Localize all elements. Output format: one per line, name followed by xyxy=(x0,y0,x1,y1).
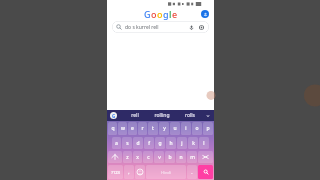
button[interactable]: , xyxy=(124,165,134,179)
button[interactable]: Space xyxy=(146,165,186,179)
button[interactable]: More suggestions xyxy=(204,112,211,119)
button[interactable]: n xyxy=(176,151,186,163)
button[interactable]: ?123 xyxy=(108,165,123,179)
staticText: r xyxy=(141,125,144,132)
staticText: p xyxy=(206,125,210,132)
staticText: rolls xyxy=(185,112,195,119)
button[interactable]: Voice search xyxy=(188,24,195,31)
button[interactable]: Backspace xyxy=(198,151,213,163)
button[interactable]: d xyxy=(133,137,143,149)
button[interactable]: Google Account xyxy=(201,10,209,18)
staticText: q xyxy=(111,125,115,132)
staticText: c xyxy=(147,154,150,161)
button[interactable]: x xyxy=(133,151,142,163)
staticText: b xyxy=(168,154,172,161)
button[interactable]: . xyxy=(187,165,197,179)
staticText: e xyxy=(172,8,178,20)
staticText: l xyxy=(203,140,205,147)
button[interactable]: w xyxy=(118,122,127,135)
staticText: . xyxy=(191,169,193,176)
staticText: , xyxy=(128,169,130,176)
staticText: l xyxy=(169,8,172,20)
button[interactable]: s xyxy=(122,137,132,149)
button[interactable]: rolling xyxy=(148,110,176,121)
button[interactable]: q xyxy=(108,122,117,135)
staticText: k xyxy=(192,140,195,147)
staticText: x xyxy=(136,154,139,161)
button[interactable]: e xyxy=(128,122,137,135)
staticText: rell xyxy=(131,112,139,119)
button[interactable]: u xyxy=(170,122,180,135)
staticText: j xyxy=(181,140,183,147)
button[interactable]: b xyxy=(165,151,175,163)
staticText: d xyxy=(136,140,140,147)
button[interactable]: h xyxy=(166,137,176,149)
staticText: g xyxy=(163,8,169,20)
staticText: h xyxy=(169,140,173,147)
staticText: z xyxy=(126,154,129,161)
button[interactable]: r xyxy=(138,122,147,135)
staticText: n xyxy=(179,154,183,161)
staticText: do s kurrel rell xyxy=(125,24,188,31)
staticText: rolling xyxy=(154,112,170,119)
staticText: a xyxy=(115,140,118,147)
staticText: o xyxy=(157,8,163,20)
button[interactable]: m xyxy=(187,151,197,163)
staticText: v xyxy=(158,154,161,161)
button[interactable]: Emoji xyxy=(135,165,145,179)
staticText: t xyxy=(152,125,154,132)
button[interactable]: rell xyxy=(121,110,148,121)
button[interactable]: y xyxy=(159,122,169,135)
button[interactable]: k xyxy=(188,137,198,149)
button[interactable]: rolls xyxy=(176,110,204,121)
button[interactable]: t xyxy=(148,122,158,135)
button[interactable]: j xyxy=(177,137,187,149)
staticText: G xyxy=(144,8,151,20)
button[interactable]: i xyxy=(181,122,191,135)
button[interactable]: p xyxy=(203,122,213,135)
staticText: G xyxy=(112,113,116,119)
staticText: e xyxy=(131,125,134,132)
staticText: o xyxy=(195,125,199,132)
button[interactable]: z xyxy=(123,151,132,163)
staticText: u xyxy=(173,125,177,132)
button[interactable]: Shift xyxy=(108,151,122,163)
staticText: w xyxy=(121,125,125,132)
button[interactable]: Search xyxy=(198,165,213,179)
staticText: s xyxy=(126,140,129,147)
button[interactable]: o xyxy=(192,122,202,135)
button[interactable]: v xyxy=(154,151,164,163)
staticText: y xyxy=(163,125,166,132)
staticText: g xyxy=(158,140,162,147)
button[interactable]: f xyxy=(144,137,154,149)
button[interactable]: Google search xyxy=(110,112,117,119)
staticText: m xyxy=(190,154,195,161)
button[interactable]: a xyxy=(112,137,121,149)
staticText: o xyxy=(151,8,157,20)
button[interactable]: c xyxy=(143,151,153,163)
button[interactable]: Google Lens xyxy=(198,24,205,31)
button[interactable]: g xyxy=(155,137,165,149)
button[interactable]: l xyxy=(199,137,209,149)
staticText: f xyxy=(148,140,150,147)
staticText: ?123 xyxy=(111,170,120,175)
staticText: Hindi xyxy=(161,170,171,175)
button[interactable]: do s kurrel rell xyxy=(112,21,209,33)
staticText: i xyxy=(185,125,187,132)
